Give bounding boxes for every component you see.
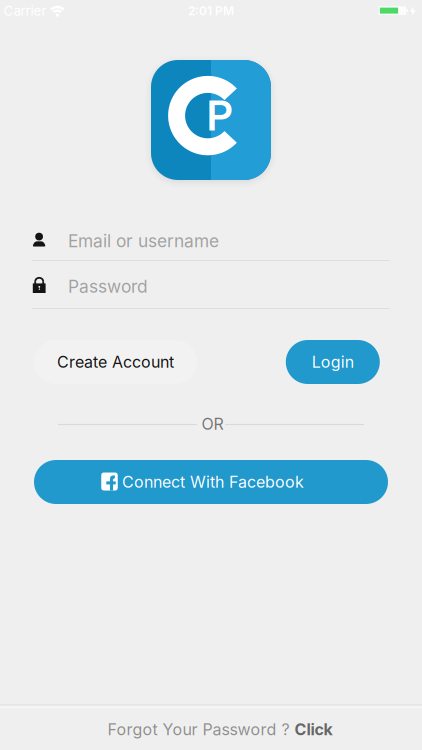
button[interactable]: Create Account [34,340,197,384]
staticText: Carrier [3,3,46,19]
staticText: Create Account [57,353,174,371]
staticText: OR [201,415,223,433]
button[interactable]: Password [0,263,422,311]
staticText: Password [68,276,148,297]
button[interactable]: Connect With Facebook [34,460,388,504]
staticText: Click [294,720,332,739]
button[interactable]: Email or username [0,217,422,265]
button[interactable]: Login [286,340,380,384]
staticText: Forgot Your Password ? [107,720,294,739]
staticText: 2:01 PM [188,4,234,18]
staticText: P [207,91,233,140]
staticText: Login [312,353,354,371]
staticText: Connect With Facebook [122,473,304,491]
staticText: Email or username [68,231,219,251]
button[interactable]: Forgot Your Password ? [9,705,422,750]
